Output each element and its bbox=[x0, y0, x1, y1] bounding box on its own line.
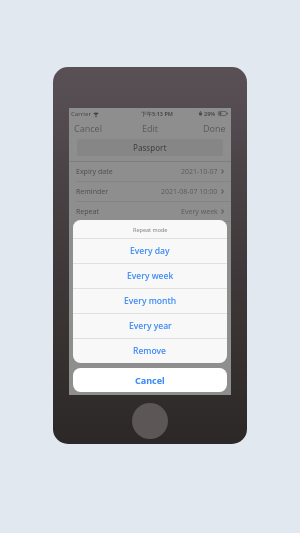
button[interactable]: Remove bbox=[73, 339, 227, 363]
button[interactable]: Reminder bbox=[69, 182, 231, 201]
staticText: Every week bbox=[181, 207, 218, 217]
staticText: Edit bbox=[142, 122, 159, 134]
staticText: Every week bbox=[127, 270, 174, 282]
staticText: Done bbox=[203, 122, 226, 134]
button[interactable]: Edit bbox=[140, 120, 161, 136]
staticText: Every day bbox=[130, 245, 170, 257]
button[interactable]: Every day bbox=[73, 239, 227, 263]
staticText: Expiry date bbox=[76, 167, 113, 177]
button[interactable]: Every year bbox=[73, 314, 227, 338]
button[interactable]: Passport bbox=[77, 139, 223, 156]
staticText: Every year bbox=[129, 320, 172, 332]
button[interactable]: Every month bbox=[73, 289, 227, 313]
staticText: Repeat mode bbox=[133, 226, 168, 233]
staticText: 下午5:13 PM bbox=[141, 110, 174, 118]
staticText: 2021-08-07 10:00 bbox=[161, 187, 218, 197]
staticText: 2021-10-07 bbox=[181, 167, 218, 177]
staticText: Cancel bbox=[135, 374, 165, 386]
staticText: Passport bbox=[133, 142, 167, 153]
button[interactable]: Cancel bbox=[73, 368, 227, 392]
button[interactable]: Home bbox=[132, 403, 168, 439]
button[interactable]: Cancel bbox=[69, 120, 106, 136]
staticText: Reminder bbox=[76, 187, 109, 197]
staticText: Every month bbox=[124, 295, 177, 307]
staticText: 29% bbox=[204, 110, 216, 117]
button[interactable]: Repeat bbox=[69, 202, 231, 221]
button[interactable]: Expiry date bbox=[69, 162, 231, 181]
button[interactable]: Every week bbox=[73, 264, 227, 288]
button[interactable]: Done bbox=[200, 120, 231, 136]
staticText: Repeat bbox=[76, 207, 100, 217]
staticText: Carrier bbox=[71, 110, 91, 118]
staticText: Remove bbox=[133, 345, 167, 357]
staticText: Cancel bbox=[74, 122, 103, 134]
